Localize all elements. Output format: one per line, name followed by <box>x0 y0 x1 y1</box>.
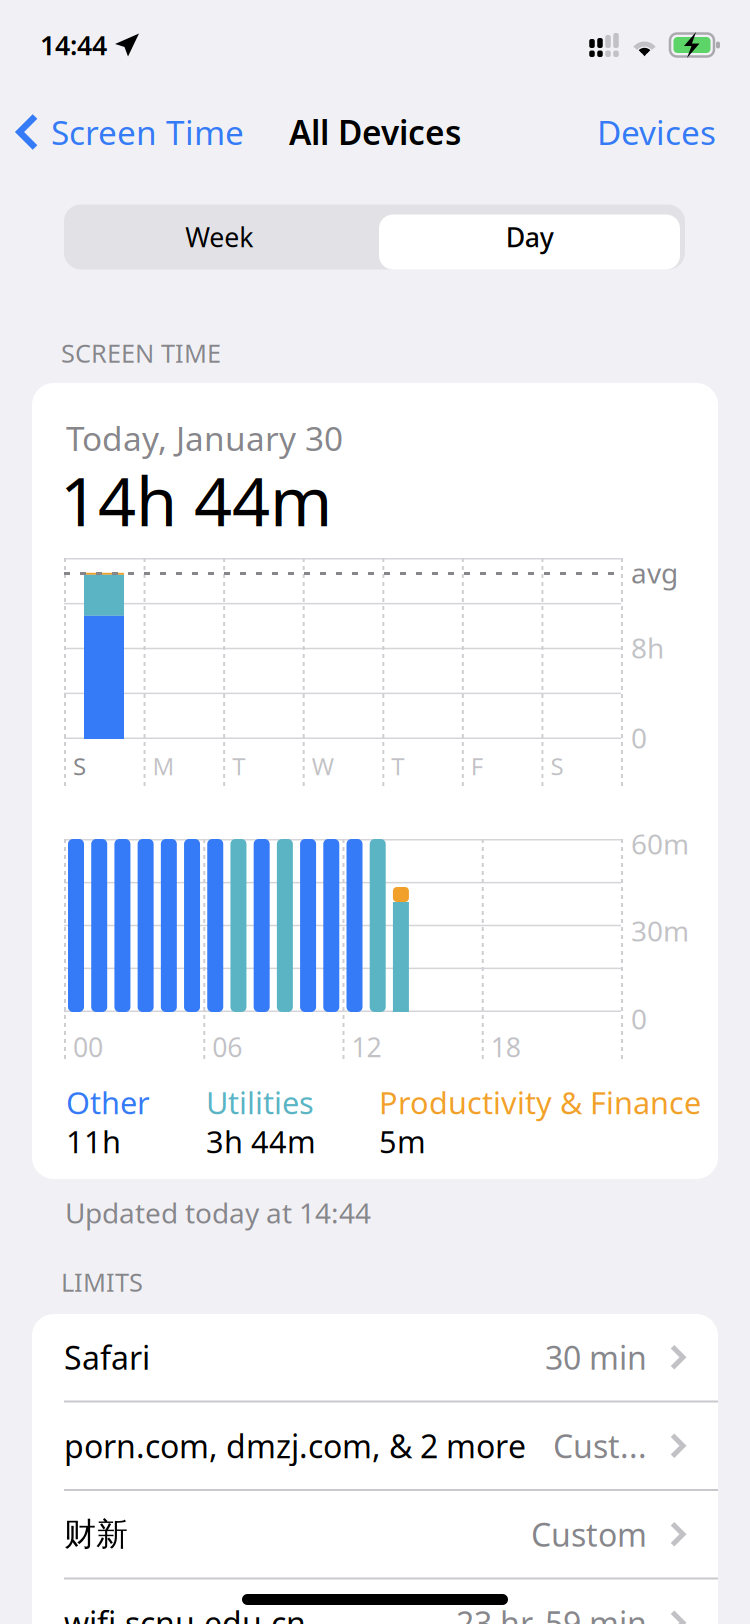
staticText: T <box>391 750 404 782</box>
staticText: Devices <box>597 110 716 154</box>
staticText: Custom <box>531 1513 647 1555</box>
staticText: All Devices <box>289 110 461 154</box>
staticText: 23 hr, 59 min <box>456 1601 647 1624</box>
staticText: F <box>471 750 483 782</box>
button[interactable]: Week <box>64 204 374 269</box>
staticText: 5m <box>379 1121 426 1162</box>
staticText: 18 <box>491 1029 521 1065</box>
staticText: S <box>73 750 86 782</box>
staticText: 8h <box>631 629 664 666</box>
staticText: Day <box>506 219 554 255</box>
staticText: 06 <box>212 1029 242 1065</box>
staticText: avg <box>631 554 678 591</box>
staticText: Updated today at 14:44 <box>65 1194 371 1231</box>
staticText: 0 <box>631 719 647 756</box>
staticText: Cust... <box>553 1424 647 1467</box>
staticText: SCREEN TIME <box>61 336 221 370</box>
staticText: M <box>153 750 175 782</box>
staticText: T <box>232 750 245 782</box>
staticText: S <box>550 750 563 782</box>
button[interactable]: wifi.scnu.edu.cn <box>32 1579 718 1624</box>
button[interactable]: Screen Time <box>0 105 244 159</box>
staticText: 00 <box>73 1029 103 1065</box>
staticText: 14:44 <box>40 27 107 63</box>
staticText: 14h 44m <box>60 456 332 544</box>
staticText: 3h 44m <box>206 1121 316 1162</box>
staticText: 财新 <box>64 1515 128 1554</box>
button[interactable]: porn.com, dmzj.com, & 2 more <box>32 1402 718 1491</box>
staticText: Other <box>66 1082 150 1123</box>
staticText: 12 <box>351 1029 381 1065</box>
button[interactable]: 财新 <box>32 1491 718 1579</box>
staticText: Utilities <box>206 1082 314 1123</box>
button[interactable]: Day <box>374 204 685 269</box>
staticText: W <box>312 750 334 782</box>
staticText: 11h <box>66 1121 121 1162</box>
staticText: 60m <box>631 825 689 862</box>
staticText: Screen Time <box>51 110 244 154</box>
staticText: Productivity & Finance <box>379 1082 701 1123</box>
staticText: wifi.scnu.edu.cn <box>64 1601 306 1624</box>
staticText: 30m <box>631 912 689 949</box>
staticText: Today, January 30 <box>66 416 343 460</box>
staticText: 30 min <box>545 1336 647 1378</box>
staticText: Safari <box>64 1336 150 1378</box>
staticText: LIMITS <box>61 1265 143 1299</box>
staticText: Week <box>185 219 253 255</box>
staticText: 0 <box>631 1000 647 1037</box>
staticText: porn.com, dmzj.com, & 2 more <box>64 1424 526 1467</box>
button[interactable]: Devices <box>597 105 750 159</box>
button[interactable]: Safari <box>32 1314 718 1402</box>
